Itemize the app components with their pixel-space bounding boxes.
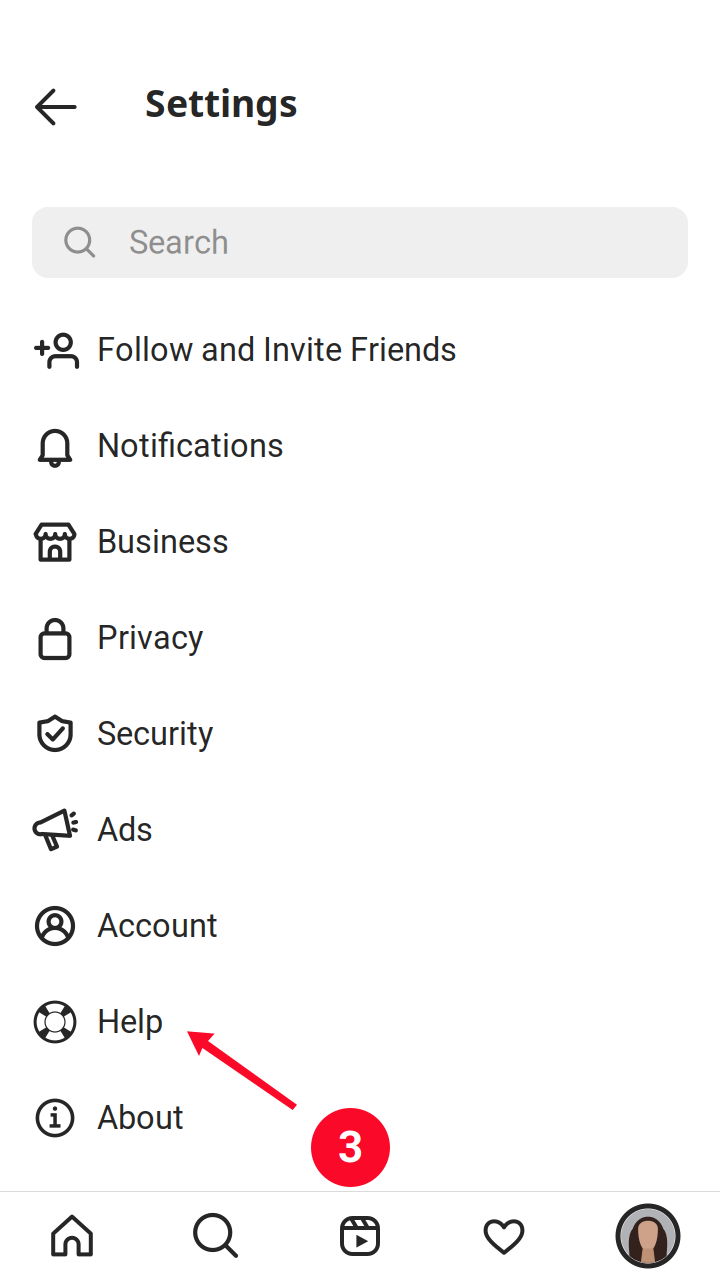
button[interactable]: Home xyxy=(0,1192,144,1280)
button[interactable]: Reels xyxy=(288,1192,432,1280)
button[interactable]: Account xyxy=(0,878,720,974)
staticText: Settings xyxy=(145,77,298,128)
staticText: 3 xyxy=(338,1122,363,1173)
button[interactable]: Business xyxy=(0,494,720,590)
button[interactable]: Notifications xyxy=(0,398,720,494)
button[interactable]: Back xyxy=(19,71,91,143)
button[interactable]: Likes xyxy=(432,1192,576,1280)
staticText: Security xyxy=(97,715,213,753)
button[interactable]: Ads xyxy=(0,782,720,878)
staticText: Follow and Invite Friends xyxy=(97,331,457,369)
staticText: Ads xyxy=(97,811,153,849)
button[interactable]: Search xyxy=(32,207,688,278)
staticText: Search xyxy=(129,223,229,262)
button[interactable]: Profile xyxy=(576,1192,720,1280)
button[interactable]: Privacy xyxy=(0,590,720,686)
staticText: Privacy xyxy=(97,619,203,657)
staticText: Notifications xyxy=(97,427,284,465)
button[interactable]: Follow and Invite Friends xyxy=(0,302,720,398)
button[interactable]: Help xyxy=(0,974,720,1070)
staticText: About xyxy=(97,1099,184,1137)
button[interactable]: About xyxy=(0,1070,720,1166)
staticText: Help xyxy=(97,1003,163,1041)
button[interactable]: Search xyxy=(144,1192,288,1280)
staticText: Account xyxy=(97,907,218,945)
staticText: Business xyxy=(97,523,229,561)
button[interactable]: Security xyxy=(0,686,720,782)
